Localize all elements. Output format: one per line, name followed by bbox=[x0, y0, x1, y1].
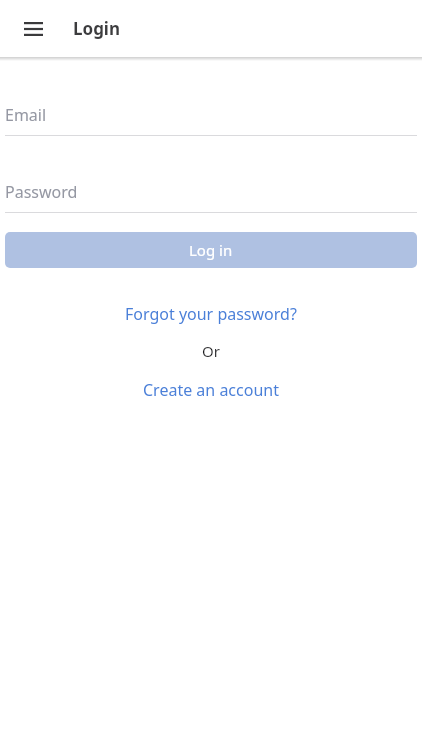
button[interactable]: Create an account bbox=[135, 377, 287, 403]
staticText: Password bbox=[5, 181, 78, 203]
button[interactable] bbox=[0, 1, 56, 57]
staticText: Login bbox=[73, 17, 121, 40]
staticText: Create an account bbox=[143, 379, 279, 401]
staticText: Forgot your password? bbox=[125, 303, 297, 325]
staticText: Email bbox=[5, 104, 47, 126]
button[interactable]: Log in bbox=[5, 232, 417, 268]
staticText: Or bbox=[202, 341, 220, 361]
staticText: Log in bbox=[189, 240, 233, 260]
button[interactable]: Forgot your password? bbox=[117, 301, 305, 327]
